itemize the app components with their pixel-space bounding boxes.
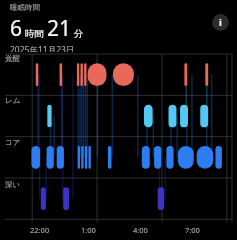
- staticText: i: [219, 16, 222, 29]
- staticText: 分: [74, 28, 84, 40]
- button[interactable]: 詳細情報: [212, 14, 229, 31]
- staticText: 覚醒: [5, 54, 20, 63]
- staticText: 4:00: [133, 225, 148, 235]
- staticText: レム: [5, 96, 21, 105]
- staticText: 22:00: [30, 225, 50, 235]
- staticText: 時間: [25, 28, 44, 40]
- staticText: 21: [47, 14, 72, 43]
- staticText: コア: [5, 138, 21, 147]
- staticText: 7:00: [185, 225, 200, 235]
- staticText: 1:00: [81, 225, 96, 235]
- staticText: 6: [10, 14, 23, 43]
- staticText: 深い: [5, 180, 21, 189]
- staticText: 2025年11月23日: [10, 44, 75, 52]
- staticText: 睡眠時間: [10, 3, 40, 12]
